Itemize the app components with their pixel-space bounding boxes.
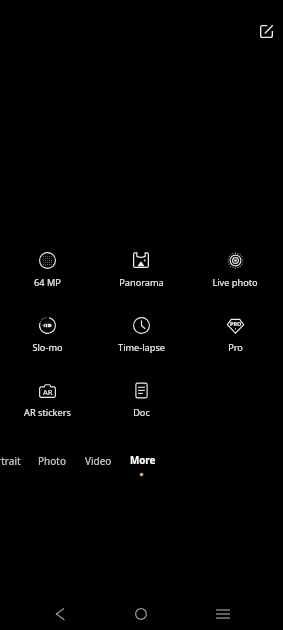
- staticText: Video: [85, 454, 112, 468]
- button[interactable]: Back: [40, 594, 80, 630]
- staticText: Panorama: [119, 276, 164, 289]
- button[interactable]: Panorama: [94, 250, 188, 289]
- staticText: More: [130, 454, 156, 467]
- button[interactable]: PRO: [188, 315, 282, 354]
- staticText: AR stickers: [24, 406, 71, 419]
- button[interactable]: Time-lapse: [94, 315, 188, 354]
- staticText: Doc: [133, 406, 150, 419]
- staticText: Time-lapse: [118, 341, 165, 354]
- staticText: PRO: [230, 320, 242, 327]
- button[interactable]: Doc: [94, 380, 188, 419]
- staticText: Pro: [228, 341, 243, 354]
- staticText: Portrait: [0, 454, 21, 468]
- button[interactable]: 64 MP: [0, 250, 94, 289]
- button[interactable]: Recent apps: [203, 594, 243, 630]
- button[interactable]: Photo: [28, 449, 76, 473]
- button[interactable]: AR: [0, 380, 94, 419]
- button[interactable]: Slo-mo: [0, 315, 94, 354]
- button[interactable]: Portrait: [0, 449, 31, 473]
- staticText: 64 MP: [34, 276, 61, 289]
- staticText: Photo: [38, 454, 66, 468]
- button[interactable]: Edit modes: [253, 18, 280, 45]
- staticText: AR: [43, 387, 53, 397]
- staticText: Live photo: [212, 276, 258, 289]
- button[interactable]: Home: [121, 594, 161, 630]
- button[interactable]: More: [120, 449, 166, 472]
- button[interactable]: Live photo: [188, 250, 282, 289]
- button[interactable]: Video: [75, 449, 122, 473]
- staticText: Slo-mo: [32, 341, 63, 354]
